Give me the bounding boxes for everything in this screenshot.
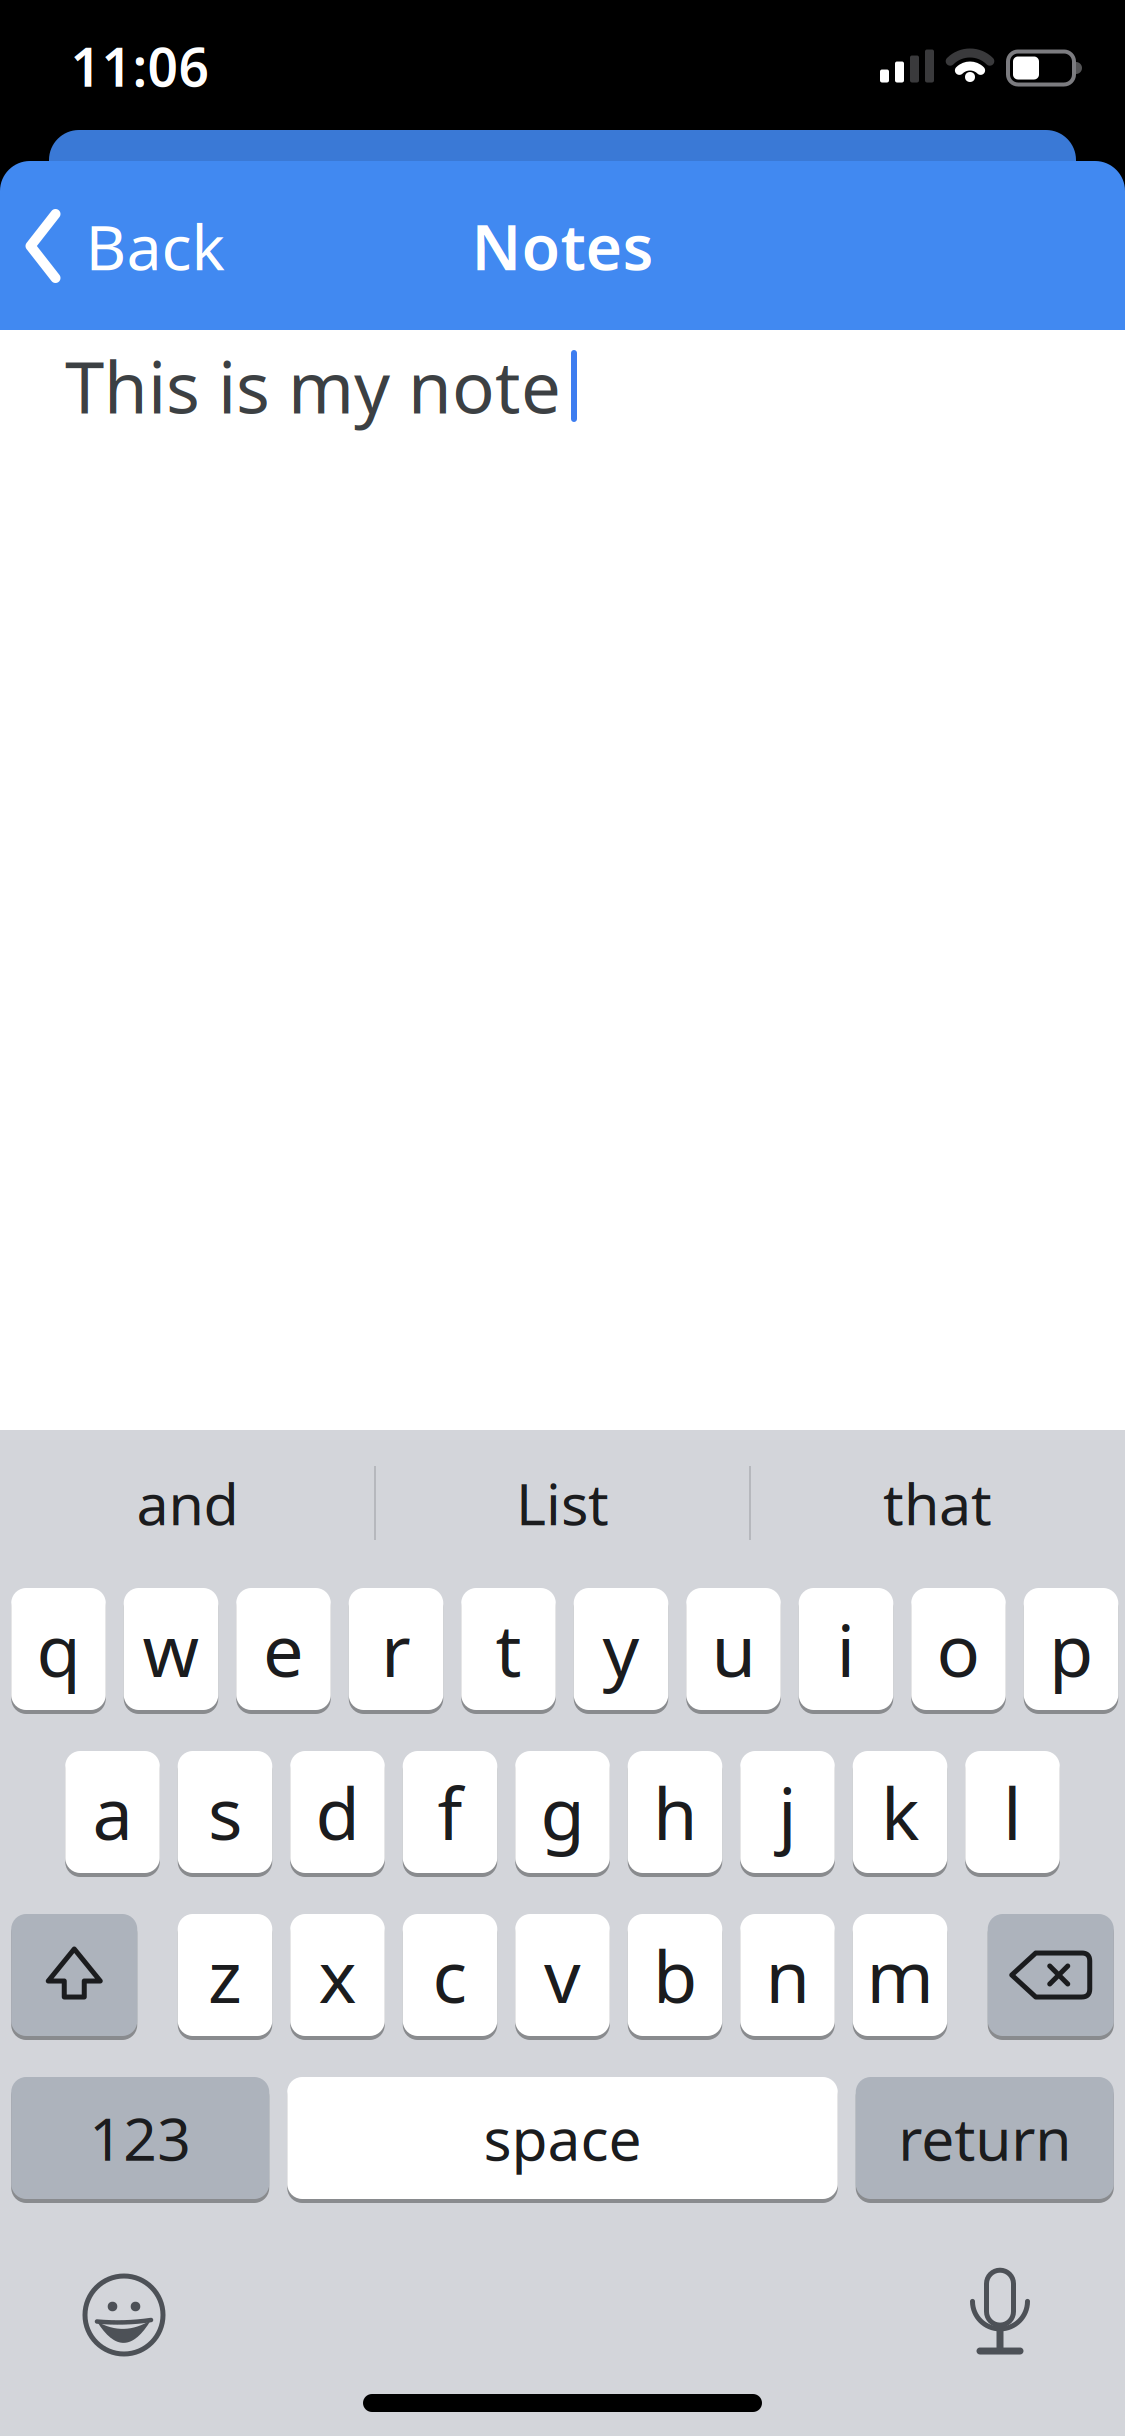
staticText: y bbox=[602, 1601, 639, 1697]
staticText: b bbox=[653, 1927, 697, 2023]
staticText: Notes bbox=[471, 204, 653, 288]
button[interactable]: space bbox=[287, 2075, 838, 2201]
button[interactable]: w bbox=[124, 1586, 218, 1712]
button[interactable]: and bbox=[7, 1448, 367, 1558]
button[interactable]: c bbox=[403, 1912, 497, 2038]
staticText: u bbox=[711, 1601, 755, 1697]
staticText: x bbox=[318, 1927, 356, 2023]
button[interactable]: r bbox=[349, 1586, 443, 1712]
button[interactable]: n bbox=[740, 1912, 835, 2038]
staticText: w bbox=[142, 1601, 199, 1697]
button[interactable]: k bbox=[853, 1749, 947, 1875]
button[interactable]: t bbox=[461, 1586, 556, 1712]
staticText: This is my note bbox=[65, 339, 561, 433]
staticText: v bbox=[544, 1927, 581, 2023]
button[interactable]: y bbox=[574, 1586, 668, 1712]
button[interactable]: i bbox=[799, 1586, 893, 1712]
staticText: a bbox=[92, 1764, 132, 1860]
button[interactable]: z bbox=[178, 1912, 272, 2038]
button[interactable]: l bbox=[965, 1749, 1060, 1875]
button[interactable]: Emoji bbox=[82, 2273, 166, 2357]
button[interactable]: s bbox=[178, 1749, 272, 1875]
button[interactable]: return bbox=[856, 2075, 1114, 2201]
button[interactable]: m bbox=[853, 1912, 947, 2038]
staticText: 123 bbox=[89, 2099, 191, 2177]
staticText: z bbox=[208, 1927, 242, 2023]
button[interactable]: Shift bbox=[11, 1912, 137, 2038]
button[interactable]: j bbox=[740, 1749, 835, 1875]
staticText: m bbox=[866, 1927, 933, 2023]
button[interactable]: Back bbox=[25, 196, 224, 296]
button[interactable]: List bbox=[382, 1448, 742, 1558]
staticText: and bbox=[136, 1465, 238, 1541]
staticText: g bbox=[540, 1764, 584, 1860]
staticText: e bbox=[263, 1601, 304, 1697]
staticText: q bbox=[36, 1601, 80, 1697]
staticText: n bbox=[765, 1927, 809, 2023]
button[interactable]: Delete bbox=[988, 1912, 1114, 2038]
button[interactable]: v bbox=[515, 1912, 610, 2038]
staticText: i bbox=[836, 1601, 855, 1697]
staticText: return bbox=[898, 2099, 1071, 2177]
staticText: List bbox=[516, 1465, 609, 1541]
button[interactable]: a bbox=[65, 1749, 160, 1875]
staticText: 11:06 bbox=[70, 31, 209, 101]
button[interactable]: e bbox=[236, 1586, 331, 1712]
staticText: o bbox=[936, 1601, 980, 1697]
button[interactable]: b bbox=[628, 1912, 722, 2038]
button[interactable]: x bbox=[290, 1912, 385, 2038]
staticText: c bbox=[432, 1927, 467, 2023]
staticText: that bbox=[883, 1465, 992, 1541]
staticText: t bbox=[495, 1601, 521, 1697]
button[interactable]: d bbox=[290, 1749, 385, 1875]
staticText: space bbox=[483, 2099, 641, 2177]
staticText: r bbox=[381, 1601, 411, 1697]
button[interactable]: Dictation bbox=[970, 2267, 1030, 2357]
button[interactable]: f bbox=[403, 1749, 497, 1875]
button[interactable]: o bbox=[911, 1586, 1006, 1712]
staticText: f bbox=[437, 1764, 462, 1860]
staticText: j bbox=[778, 1764, 797, 1860]
staticText: h bbox=[653, 1764, 697, 1860]
staticText: k bbox=[881, 1764, 919, 1860]
button[interactable]: 123 bbox=[11, 2075, 269, 2201]
staticText: l bbox=[1003, 1764, 1022, 1860]
button[interactable]: that bbox=[757, 1448, 1117, 1558]
staticText: d bbox=[315, 1764, 359, 1860]
staticText: Back bbox=[85, 204, 224, 288]
button[interactable]: p bbox=[1024, 1586, 1118, 1712]
staticText: p bbox=[1049, 1601, 1093, 1697]
button[interactable]: q bbox=[11, 1586, 106, 1712]
button[interactable]: g bbox=[515, 1749, 610, 1875]
button[interactable]: h bbox=[628, 1749, 722, 1875]
staticText: s bbox=[208, 1764, 242, 1860]
button[interactable]: u bbox=[686, 1586, 781, 1712]
